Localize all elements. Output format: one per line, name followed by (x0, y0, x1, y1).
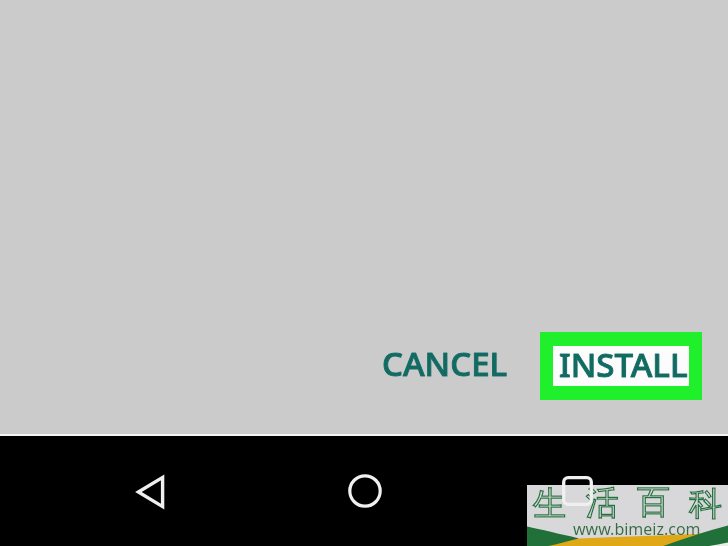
staticText: 科 (689, 485, 722, 525)
button[interactable]: Home (347, 473, 383, 509)
staticText: CANCEL (382, 341, 508, 386)
staticText: 生 (533, 485, 566, 525)
staticText: INSTALL (559, 342, 688, 387)
button[interactable]: CANCEL (382, 341, 508, 386)
button[interactable]: Recents (562, 476, 593, 506)
staticText: 百 (637, 485, 670, 523)
staticText: 活 (586, 485, 619, 524)
staticText: INSTALL (559, 342, 688, 387)
staticText: CANCEL (382, 341, 508, 386)
button[interactable]: Back (135, 474, 166, 510)
staticText: www.bimeiz.com (573, 518, 701, 540)
button[interactable]: INSTALL (540, 332, 702, 400)
